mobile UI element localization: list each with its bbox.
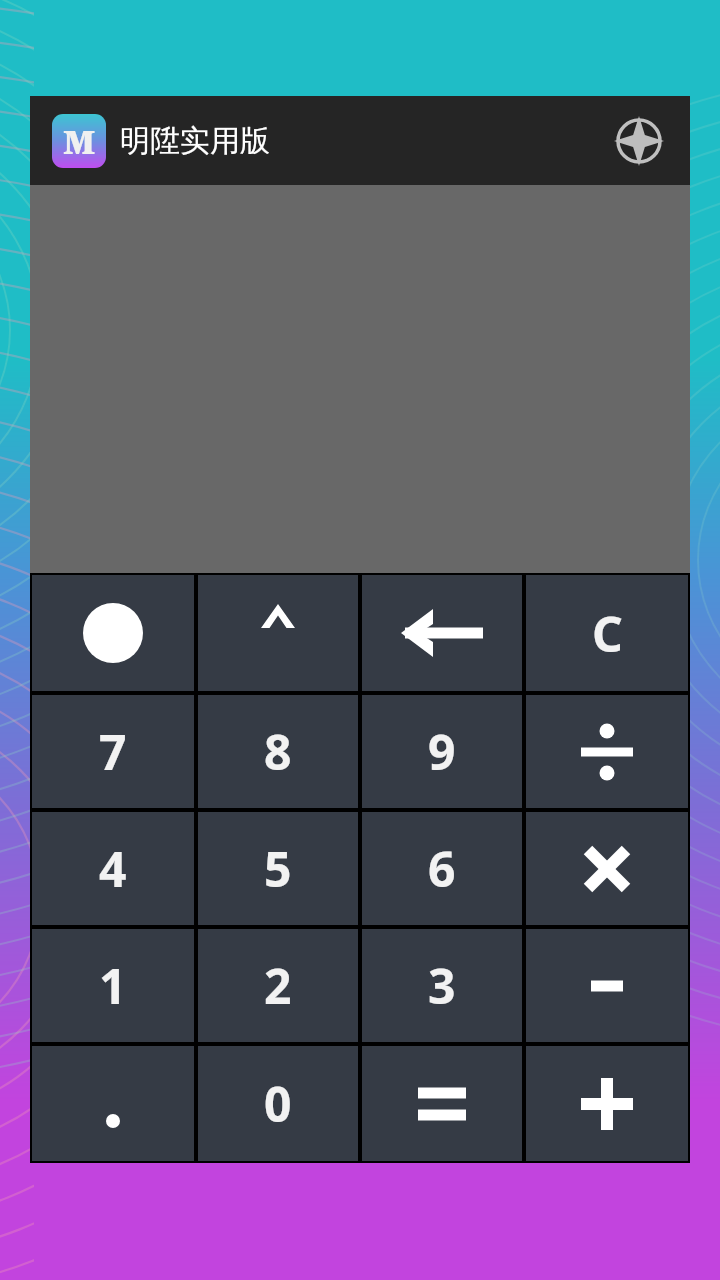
button[interactable]: Equals (362, 1046, 522, 1161)
staticText: 5 (264, 836, 292, 901)
button[interactable]: Divide (526, 695, 688, 808)
button[interactable]: 2 (198, 929, 358, 1042)
button[interactable]: 7 (32, 695, 194, 808)
staticText: 0 (264, 1071, 292, 1136)
button[interactable]: 0 (198, 1046, 358, 1161)
button[interactable]: App icon (52, 114, 106, 168)
staticText: 3 (428, 953, 456, 1018)
button[interactable]: Power (198, 575, 358, 691)
staticText: 4 (99, 836, 127, 901)
button[interactable]: 6 (362, 812, 522, 925)
button[interactable]: Plus (526, 1046, 688, 1161)
button[interactable]: Round (32, 575, 194, 691)
button[interactable]: 4 (32, 812, 194, 925)
button[interactable]: Backspace (362, 575, 522, 691)
button[interactable]: Compass (610, 112, 668, 170)
staticText: 1 (99, 953, 127, 1018)
button[interactable]: 1 (32, 929, 194, 1042)
staticText: 8 (264, 719, 292, 784)
button[interactable]: 9 (362, 695, 522, 808)
button[interactable]: C (526, 575, 688, 691)
staticText: 明陞实用版 (120, 122, 270, 160)
button[interactable]: Decimal point (32, 1046, 194, 1161)
staticText: M (63, 119, 95, 164)
button[interactable]: Minus (526, 929, 688, 1042)
staticText: C (592, 601, 623, 666)
staticText: 2 (264, 953, 292, 1018)
staticText: 9 (428, 719, 456, 784)
button[interactable]: 5 (198, 812, 358, 925)
button[interactable]: Multiply (526, 812, 688, 925)
button[interactable]: 8 (198, 695, 358, 808)
staticText: 7 (99, 719, 127, 784)
button[interactable]: 3 (362, 929, 522, 1042)
staticText: 6 (428, 836, 456, 901)
